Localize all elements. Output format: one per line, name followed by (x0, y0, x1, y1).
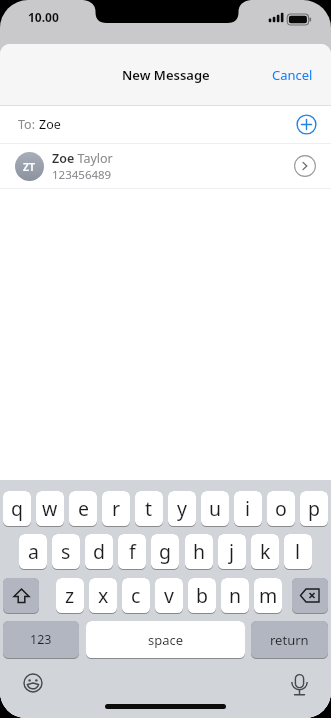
staticText: g (159, 538, 171, 565)
button[interactable]: i (234, 491, 262, 527)
staticText: l (295, 538, 301, 565)
button[interactable]: ZT (0, 144, 331, 188)
staticText: New Message (122, 66, 210, 84)
staticText: y (177, 495, 187, 522)
staticText: Cancel (272, 66, 313, 84)
button[interactable]: b (188, 578, 216, 614)
staticText: d (93, 538, 105, 565)
button[interactable]: o (267, 491, 295, 527)
staticText: return (270, 631, 309, 649)
button[interactable]: x (89, 578, 117, 614)
staticText: 10.00 (28, 9, 59, 25)
staticText: k (260, 538, 271, 565)
staticText: x (98, 582, 109, 609)
staticText: e (78, 495, 89, 522)
button[interactable]: m (254, 578, 282, 614)
button[interactable] (292, 578, 328, 614)
staticText: space (148, 631, 184, 649)
staticText: i (245, 495, 251, 522)
staticText: f (129, 538, 136, 565)
staticText: c (131, 582, 141, 609)
staticText: To: (18, 116, 35, 133)
staticText: z (65, 582, 75, 609)
button[interactable] (3, 578, 39, 614)
button[interactable]: e (69, 491, 97, 527)
button[interactable]: n (221, 578, 249, 614)
button[interactable]: space (86, 621, 245, 659)
button[interactable]: f (118, 534, 146, 570)
staticText: ZT (23, 160, 36, 174)
button[interactable]: return (251, 621, 328, 659)
staticText: p (308, 495, 320, 522)
button[interactable]: c (122, 578, 150, 614)
staticText: s (61, 538, 71, 565)
staticText: a (28, 538, 39, 565)
button[interactable]: z (56, 578, 84, 614)
staticText: u (209, 495, 222, 522)
staticText: Zoe Taylor (52, 150, 113, 167)
button[interactable] (291, 674, 308, 696)
staticText: n (229, 582, 242, 609)
button[interactable]: u (201, 491, 229, 527)
button[interactable]: y (168, 491, 196, 527)
button[interactable]: h (185, 534, 213, 570)
staticText: Zoe (39, 116, 61, 133)
button[interactable] (23, 673, 43, 693)
staticText: h (193, 538, 206, 565)
button[interactable]: g (151, 534, 179, 570)
button[interactable]: s (52, 534, 80, 570)
button[interactable]: w (36, 491, 64, 527)
staticText: 123 (30, 631, 52, 648)
staticText: b (196, 582, 208, 609)
button[interactable]: a (19, 534, 47, 570)
staticText: m (259, 582, 278, 609)
staticText: v (164, 582, 174, 609)
button[interactable]: p (300, 491, 328, 527)
button[interactable]: r (102, 491, 130, 527)
staticText: 123456489 (52, 167, 112, 183)
button[interactable]: d (85, 534, 113, 570)
button[interactable]: q (3, 491, 31, 527)
staticText: q (11, 495, 23, 522)
button[interactable]: j (218, 534, 246, 570)
button[interactable]: v (155, 578, 183, 614)
staticText: w (42, 495, 58, 522)
button[interactable]: To: (0, 106, 331, 143)
button[interactable]: 123 (3, 621, 79, 659)
button[interactable]: t (135, 491, 163, 527)
staticText: o (275, 495, 287, 522)
button[interactable]: k (251, 534, 279, 570)
button[interactable]: l (284, 534, 312, 570)
staticText: t (145, 495, 153, 522)
staticText: j (229, 538, 235, 565)
staticText: r (112, 495, 121, 522)
button[interactable]: Cancel (272, 66, 313, 84)
